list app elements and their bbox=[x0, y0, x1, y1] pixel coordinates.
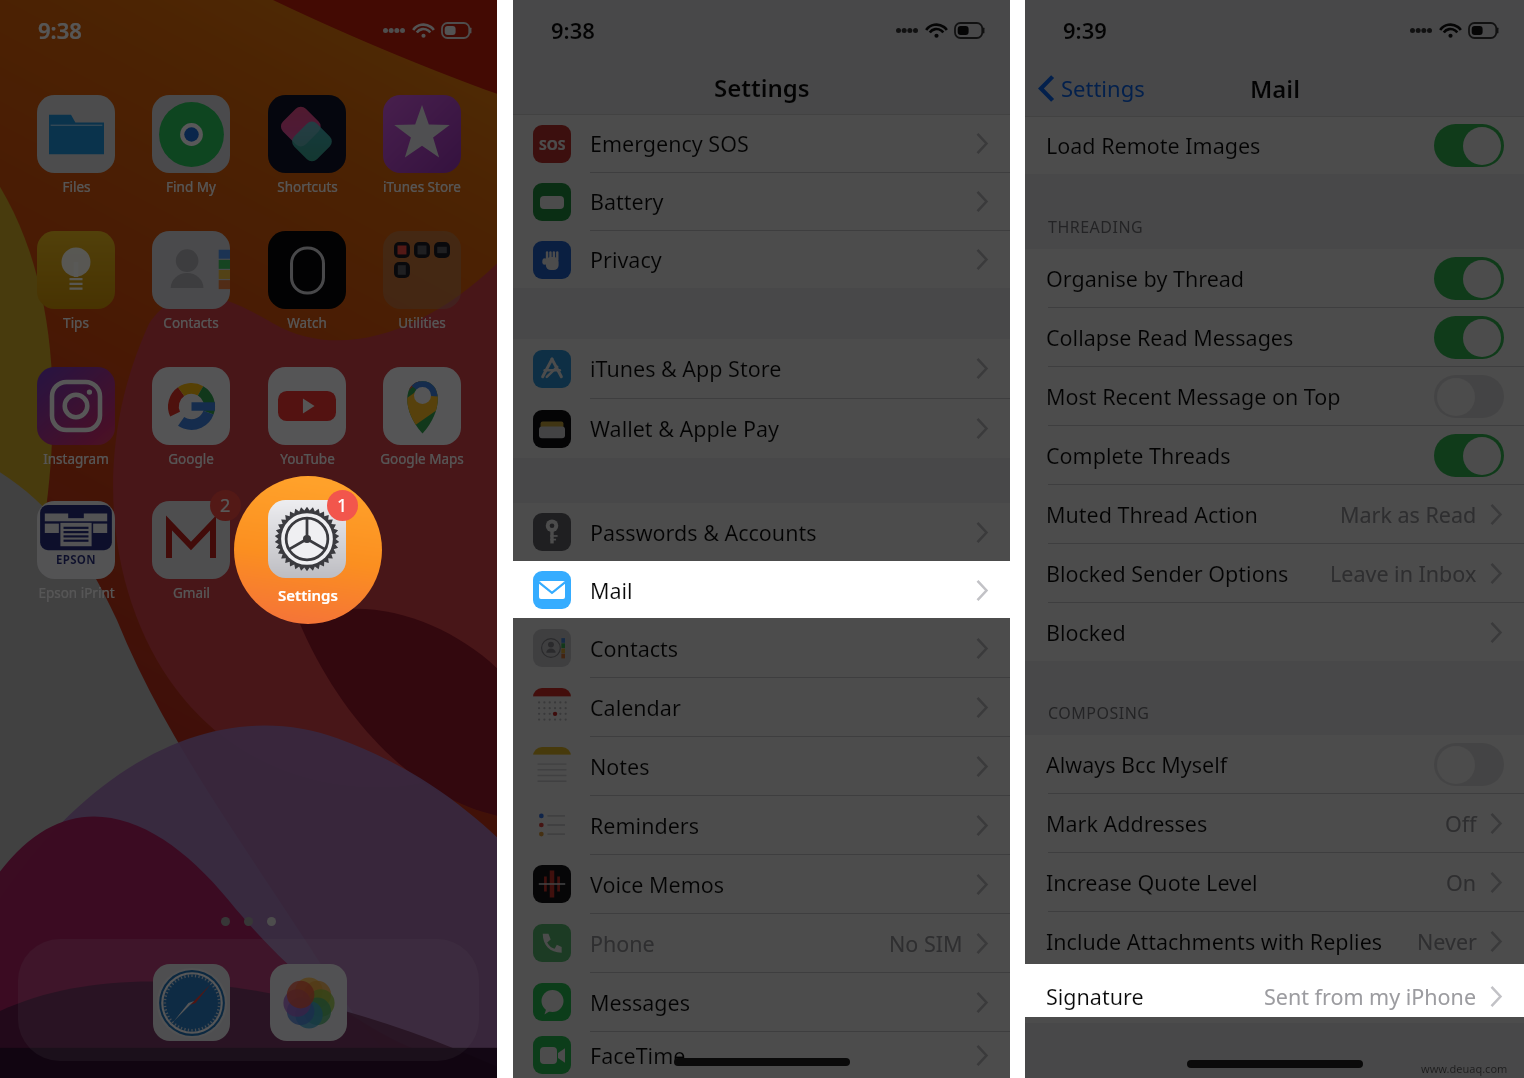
button[interactable]: Mail bbox=[513, 561, 1010, 619]
staticText: Tips bbox=[63, 314, 89, 332]
button[interactable]: Tips bbox=[24, 231, 128, 332]
staticText: Organise by Thread bbox=[1046, 264, 1434, 293]
button[interactable]: Shortcuts bbox=[255, 95, 359, 196]
staticText: YouTube bbox=[280, 450, 335, 468]
button[interactable]: Contacts bbox=[139, 231, 243, 332]
button[interactable]: Blocked bbox=[1025, 603, 1524, 661]
button[interactable]: Voice Memos bbox=[513, 855, 1010, 913]
staticText: Collapse Read Messages bbox=[1046, 323, 1434, 352]
staticText: Battery bbox=[590, 187, 975, 216]
button[interactable]: iTunes Store bbox=[370, 95, 474, 196]
staticText: 2 bbox=[220, 493, 231, 518]
button[interactable]: Mark Addresses bbox=[1025, 794, 1524, 852]
button[interactable]: Most Recent Message on Top bbox=[1025, 367, 1524, 425]
button[interactable]: Privacy bbox=[513, 231, 1010, 288]
button[interactable]: Include Attachments with Replies bbox=[1025, 912, 1524, 970]
button[interactable]: On bbox=[1434, 257, 1504, 300]
button[interactable]: Notes bbox=[513, 737, 1010, 795]
staticText: Contacts bbox=[163, 314, 219, 332]
staticText: Settings bbox=[278, 585, 338, 605]
staticText: Complete Threads bbox=[1046, 441, 1434, 470]
staticText: Watch bbox=[287, 314, 327, 332]
staticText: SOS bbox=[539, 135, 566, 154]
staticText: Leave in Inbox bbox=[1330, 559, 1477, 588]
button[interactable]: Google Maps bbox=[370, 367, 474, 468]
button[interactable]: Load Remote Images bbox=[1025, 117, 1524, 174]
button[interactable]: Off bbox=[1434, 743, 1504, 786]
button[interactable]: FaceTime bbox=[513, 1032, 1010, 1078]
button[interactable]: SOS bbox=[513, 115, 1010, 172]
staticText: EPSON bbox=[56, 552, 96, 568]
button[interactable]: Gmail bbox=[139, 501, 243, 602]
staticText: Include Attachments with Replies bbox=[1046, 927, 1417, 956]
staticText: Messages bbox=[590, 988, 975, 1017]
staticText: Google Maps bbox=[380, 450, 464, 468]
staticText: Shortcuts bbox=[277, 178, 338, 196]
staticText: Files bbox=[62, 178, 91, 196]
button[interactable]: YouTube bbox=[255, 367, 359, 468]
staticText: Instagram bbox=[43, 450, 109, 468]
staticText: Muted Thread Action bbox=[1046, 500, 1340, 529]
button[interactable]: Always Bcc Myself bbox=[1025, 735, 1524, 793]
staticText: Google bbox=[168, 450, 214, 468]
staticText: Signature bbox=[1046, 982, 1264, 1011]
staticText: Calendar bbox=[590, 693, 975, 722]
button[interactable]: Settings app bbox=[234, 476, 382, 624]
button[interactable]: Wallet & Apple Pay bbox=[513, 399, 1010, 458]
button[interactable]: Organise by Thread bbox=[1025, 249, 1524, 307]
button[interactable]: Files bbox=[24, 95, 128, 196]
button[interactable]: Find My bbox=[139, 95, 243, 196]
button[interactable]: Battery bbox=[513, 173, 1010, 230]
button[interactable]: Off bbox=[1434, 375, 1504, 418]
button[interactable]: EPSON bbox=[24, 501, 128, 602]
staticText: Increase Quote Level bbox=[1046, 868, 1446, 897]
button[interactable]: Collapse Read Messages bbox=[1025, 308, 1524, 366]
button[interactable]: Phone bbox=[513, 914, 1010, 972]
staticText: Reminders bbox=[590, 811, 975, 840]
button[interactable]: Watch bbox=[255, 231, 359, 332]
button[interactable]: Messages bbox=[513, 973, 1010, 1031]
button[interactable]: iTunes & App Store bbox=[513, 339, 1010, 398]
staticText: COMPOSING bbox=[1048, 702, 1150, 724]
staticText: Contacts bbox=[590, 634, 975, 663]
staticText: Blocked bbox=[1046, 618, 1489, 647]
staticText: 9:38 bbox=[551, 15, 595, 45]
staticText: Mail bbox=[1250, 72, 1300, 105]
staticText: Notes bbox=[590, 752, 975, 781]
staticText: Settings bbox=[1061, 73, 1145, 103]
staticText: Mark as Read bbox=[1340, 500, 1477, 529]
button[interactable]: Signature bbox=[1025, 970, 1524, 1023]
staticText: Passwords & Accounts bbox=[590, 518, 975, 547]
staticText: Voice Memos bbox=[590, 870, 975, 899]
staticText: Sent from my iPhone bbox=[1264, 982, 1477, 1011]
button[interactable]: Blocked Sender Options bbox=[1025, 544, 1524, 602]
button[interactable]: Instagram bbox=[24, 367, 128, 468]
button[interactable]: Muted Thread Action bbox=[1025, 485, 1524, 543]
button[interactable]: Reminders bbox=[513, 796, 1010, 854]
button[interactable]: Safari bbox=[153, 964, 230, 1041]
staticText: iTunes & App Store bbox=[590, 354, 975, 383]
button[interactable]: Settings bbox=[1039, 73, 1145, 103]
staticText: Wallet & Apple Pay bbox=[590, 414, 975, 443]
button[interactable]: On bbox=[1434, 434, 1504, 477]
button[interactable]: On bbox=[1434, 124, 1504, 167]
button[interactable]: Contacts bbox=[513, 619, 1010, 677]
button[interactable]: Complete Threads bbox=[1025, 426, 1524, 484]
staticText: Most Recent Message on Top bbox=[1046, 382, 1434, 411]
staticText: Settings bbox=[714, 71, 810, 104]
staticText: Load Remote Images bbox=[1046, 131, 1434, 160]
staticText: www.deuaq.com bbox=[1421, 1061, 1508, 1076]
staticText: Always Bcc Myself bbox=[1046, 750, 1434, 779]
button[interactable]: Google bbox=[139, 367, 243, 468]
button[interactable]: Photos bbox=[270, 964, 347, 1041]
staticText: Gmail bbox=[173, 584, 210, 602]
staticText: Off bbox=[1445, 809, 1477, 838]
button[interactable]: Passwords & Accounts bbox=[513, 503, 1010, 561]
button[interactable]: Increase Quote Level bbox=[1025, 853, 1524, 911]
button[interactable]: Calendar bbox=[513, 678, 1010, 736]
button[interactable]: Utilities bbox=[370, 231, 474, 332]
button[interactable]: On bbox=[1434, 316, 1504, 359]
staticText: Utilities bbox=[398, 314, 446, 332]
staticText: On bbox=[1446, 868, 1477, 897]
staticText: Find My bbox=[166, 178, 216, 196]
